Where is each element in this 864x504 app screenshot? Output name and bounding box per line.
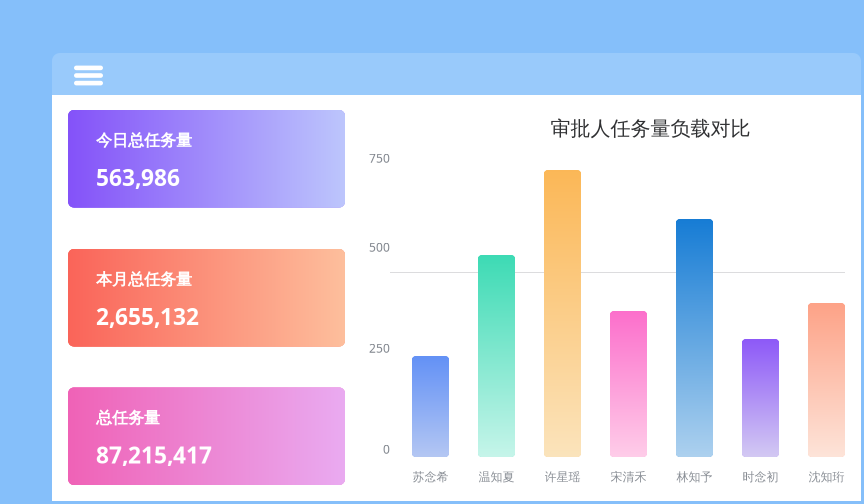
- button[interactable]: 林知予: [676, 219, 713, 457]
- staticText: 500: [369, 239, 390, 255]
- staticText: 宋清禾: [610, 470, 646, 484]
- staticText: 林知予: [676, 470, 712, 484]
- staticText: 750: [369, 150, 390, 166]
- staticText: 总任务量: [96, 408, 160, 428]
- staticText: 563,986: [96, 162, 180, 192]
- staticText: 许星瑶: [544, 470, 580, 484]
- button[interactable]: 时念初: [742, 339, 779, 457]
- button[interactable]: 苏念希: [412, 356, 449, 457]
- staticText: 今日总任务量: [96, 131, 192, 150]
- button[interactable]: 本月总任务量: [68, 249, 345, 346]
- staticText: 温知夏: [478, 470, 514, 484]
- staticText: 时念初: [742, 470, 778, 484]
- button[interactable]: 沈知珩: [808, 303, 845, 457]
- staticText: 2,655,132: [96, 301, 199, 331]
- staticText: 250: [369, 340, 390, 356]
- button[interactable]: 宋清禾: [610, 311, 647, 457]
- staticText: 0: [383, 441, 390, 457]
- staticText: 本月总任务量: [96, 270, 192, 289]
- button[interactable]: Menu: [66, 59, 110, 93]
- staticText: 87,215,417: [96, 440, 212, 470]
- button[interactable]: 总任务量: [68, 387, 345, 485]
- button[interactable]: 今日总任务量: [68, 110, 345, 207]
- button[interactable]: 许星瑶: [544, 170, 581, 457]
- staticText: 沈知珩: [808, 470, 844, 484]
- staticText: 苏念希: [412, 470, 448, 484]
- button[interactable]: 温知夏: [478, 255, 515, 457]
- staticText: 审批人任务量负载对比: [550, 116, 750, 141]
